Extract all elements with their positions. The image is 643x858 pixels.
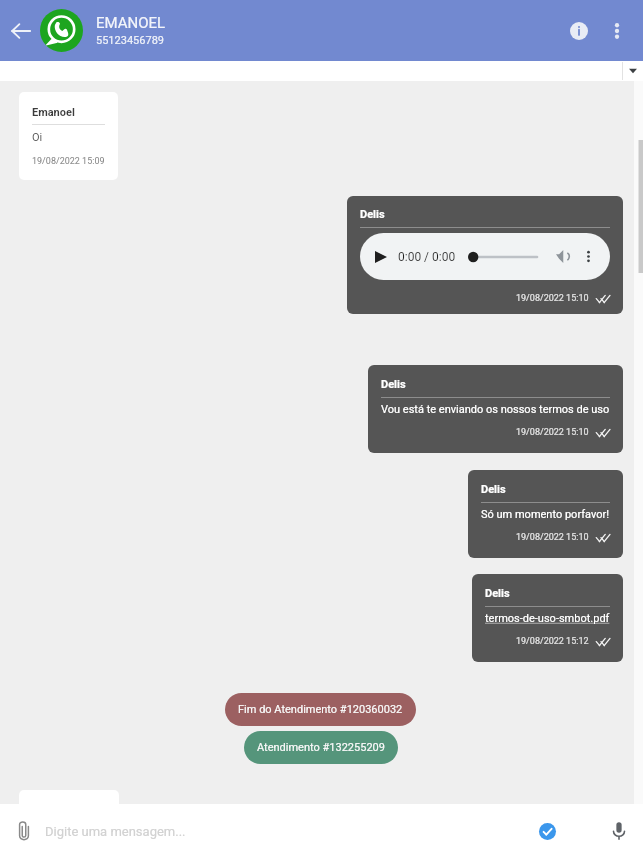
button[interactable]: Fim do Atendimento #120360032	[225, 693, 416, 726]
button[interactable]: Delis	[368, 365, 623, 453]
button[interactable]: Info	[560, 12, 598, 50]
staticText: Fim do Atendimento #120360032	[238, 703, 403, 716]
button[interactable]: Delis	[472, 574, 623, 662]
staticText: EMANOEL	[96, 14, 166, 32]
button[interactable]: Dropdown	[623, 61, 643, 81]
staticText: Vou está te enviando os nossos termos de…	[381, 403, 610, 416]
staticText: Só um momento porfavor!	[481, 508, 610, 521]
staticText: Emanoel	[32, 106, 75, 119]
staticText: Delis	[360, 208, 385, 221]
button[interactable]: Voice message	[602, 814, 636, 848]
staticText: 19/08/2022 15:10	[516, 293, 589, 304]
staticText: Atendimento #132255209	[257, 741, 385, 754]
staticText: 19/08/2022 15:12	[516, 636, 589, 647]
staticText: 55123456789	[96, 34, 165, 47]
staticText: 19/08/2022 15:10	[516, 427, 589, 438]
button[interactable]: Attach	[7, 814, 41, 848]
staticText: Delis	[381, 378, 406, 391]
button[interactable]: Delis	[347, 196, 623, 314]
staticText: 0:00 / 0:00	[398, 250, 456, 264]
staticText: Delis	[481, 483, 506, 496]
button[interactable]: Emanoel	[19, 92, 118, 180]
staticText: 19/08/2022 15:09	[32, 156, 105, 167]
staticText: Digite uma mensagem...	[45, 824, 186, 839]
staticText: Delis	[485, 587, 510, 600]
button[interactable]: Atendimento #132255209	[244, 731, 398, 764]
button[interactable]: Send	[530, 814, 564, 848]
staticText: 19/08/2022 15:10	[516, 532, 589, 543]
button[interactable]: Delis	[468, 470, 623, 558]
staticText: termos-de-uso-smbot.pdf	[485, 612, 610, 625]
staticText: Oi	[32, 131, 43, 144]
button[interactable]: Back	[4, 14, 38, 48]
button[interactable]: More options	[600, 14, 634, 48]
